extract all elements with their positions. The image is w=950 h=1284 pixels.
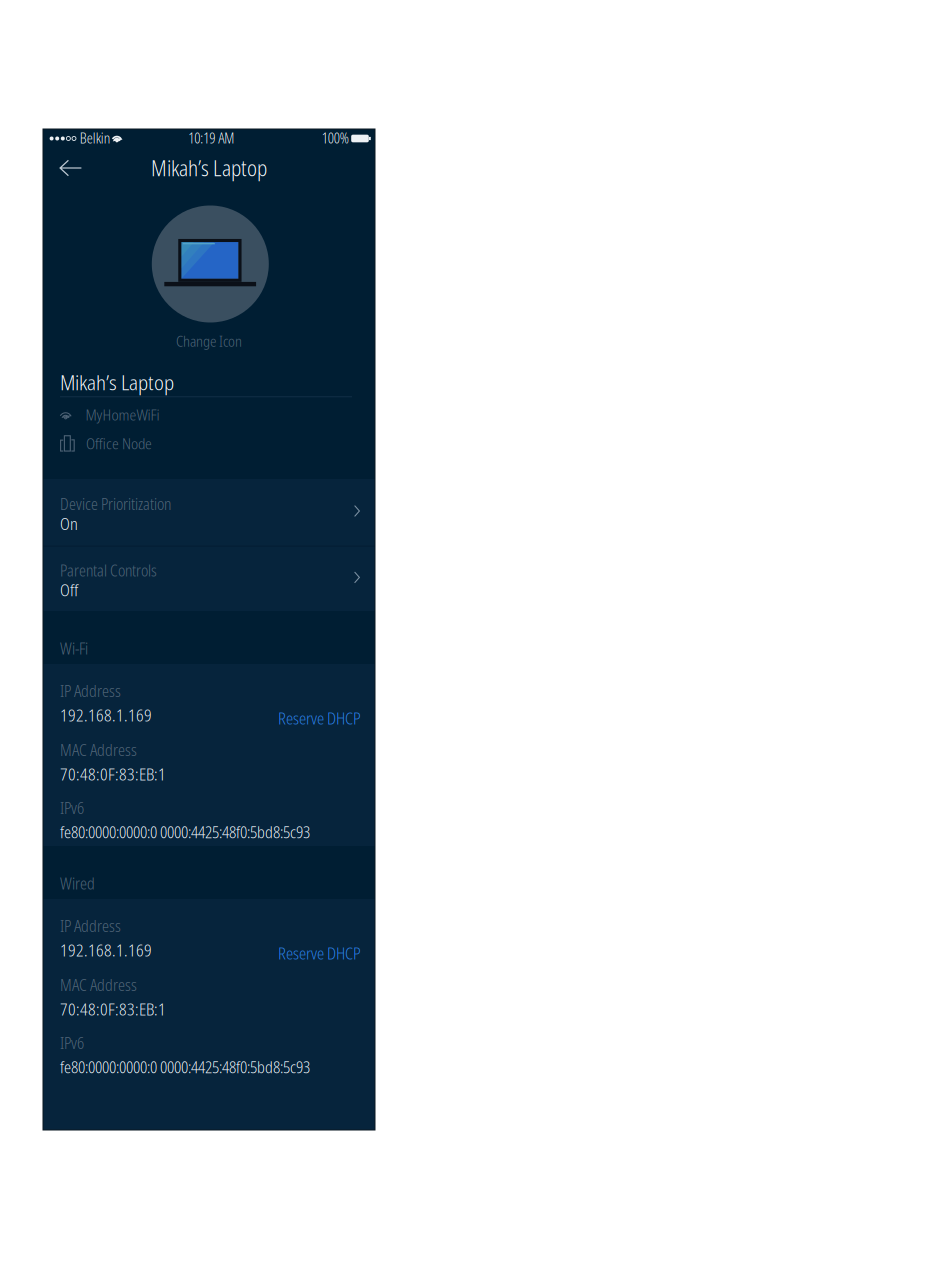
staticText: 10:19 AM: [188, 129, 234, 147]
staticText: IPv6: [60, 1032, 84, 1054]
staticText: 70:48:0F:83:EB:1: [60, 998, 166, 1020]
button[interactable]: Back: [47, 149, 93, 187]
staticText: MAC Address: [60, 739, 137, 761]
staticText: Parental Controls: [60, 560, 157, 581]
staticText: IP Address: [60, 680, 121, 702]
staticText: Mikah’s Laptop: [151, 154, 267, 182]
staticText: 192.168.1.169: [60, 939, 152, 961]
staticText: Off: [60, 579, 78, 601]
staticText: Belkin: [80, 129, 111, 147]
button[interactable]: Parental Controls: [43, 545, 375, 609]
staticText: IP Address: [60, 915, 121, 937]
button[interactable]: Reserve DHCP: [278, 704, 361, 732]
staticText: MyHomeWiFi: [85, 404, 159, 425]
button[interactable]: Reserve DHCP: [278, 939, 361, 967]
staticText: IPv6: [60, 797, 84, 819]
button[interactable]: Device Prioritization: [43, 479, 375, 546]
staticText: Device Prioritization: [60, 493, 171, 515]
staticText: Mikah’s Laptop: [60, 368, 174, 396]
staticText: On: [60, 512, 78, 535]
staticText: Reserve DHCP: [278, 942, 361, 964]
staticText: fe80:0000:0000:0 0000:4425:48f0:5bd8:5c9…: [60, 821, 310, 843]
staticText: Wired: [60, 873, 95, 894]
staticText: fe80:0000:0000:0 0000:4425:48f0:5bd8:5c9…: [60, 1056, 310, 1078]
button[interactable]: Change device icon: [152, 205, 269, 322]
staticText: Change Icon: [176, 331, 242, 351]
button[interactable]: Change Icon: [43, 331, 375, 351]
staticText: 100%: [322, 129, 349, 147]
staticText: Wi-Fi: [60, 638, 88, 659]
staticText: 70:48:0F:83:EB:1: [60, 763, 166, 785]
staticText: Reserve DHCP: [278, 707, 361, 729]
staticText: 192.168.1.169: [60, 704, 152, 726]
staticText: Office Node: [86, 433, 152, 454]
staticText: MAC Address: [60, 974, 137, 996]
